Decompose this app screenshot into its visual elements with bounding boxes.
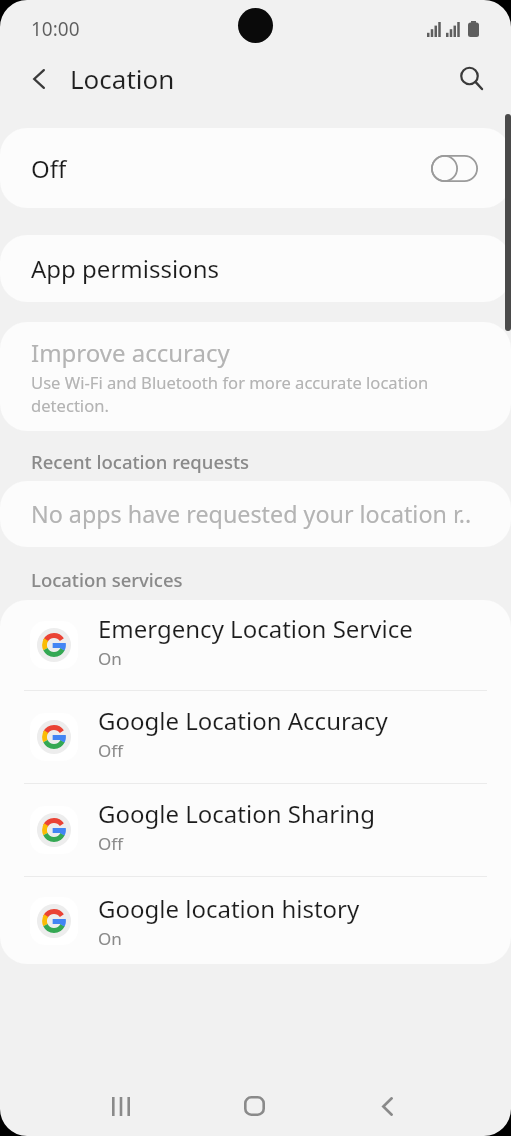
button[interactable]: Google location history: [0, 877, 511, 964]
button[interactable]: Navigate up: [12, 57, 68, 100]
staticText: Improve accuracy: [31, 336, 230, 369]
staticText: Google location history: [98, 892, 360, 925]
staticText: On: [98, 927, 122, 950]
staticText: On: [98, 647, 122, 670]
button[interactable]: No apps have requested your location r..: [0, 481, 511, 547]
button[interactable]: Off: [0, 128, 511, 208]
staticText: Location services: [31, 567, 183, 592]
staticText: Recent location requests: [31, 449, 250, 474]
button[interactable]: Recent apps: [94, 1079, 148, 1133]
staticText: Off: [98, 739, 123, 762]
staticText: 10:00: [31, 16, 80, 42]
button[interactable]: Google Location Accuracy: [0, 691, 511, 783]
staticText: Off: [98, 832, 123, 855]
button[interactable]: Back: [360, 1079, 414, 1133]
button[interactable]: Home: [227, 1079, 281, 1133]
staticText: Emergency Location Service: [98, 612, 413, 645]
staticText: Google Location Sharing: [98, 797, 375, 830]
button[interactable]: Google Location Sharing: [0, 784, 511, 876]
staticText: Google Location Accuracy: [98, 704, 388, 737]
button[interactable]: Emergency Location Service: [0, 600, 511, 690]
button[interactable]: Improve accuracy: [0, 322, 511, 431]
staticText: Off: [31, 152, 67, 185]
button[interactable]: App permissions: [0, 235, 511, 302]
staticText: Location: [70, 61, 175, 96]
staticText: No apps have requested your location r..: [31, 498, 472, 530]
button[interactable]: Search: [443, 57, 499, 100]
button[interactable]: Location toggle: [431, 155, 478, 182]
staticText: App permissions: [31, 252, 219, 285]
staticText: Use Wi-Fi and Bluetooth for more accurat…: [31, 371, 485, 417]
